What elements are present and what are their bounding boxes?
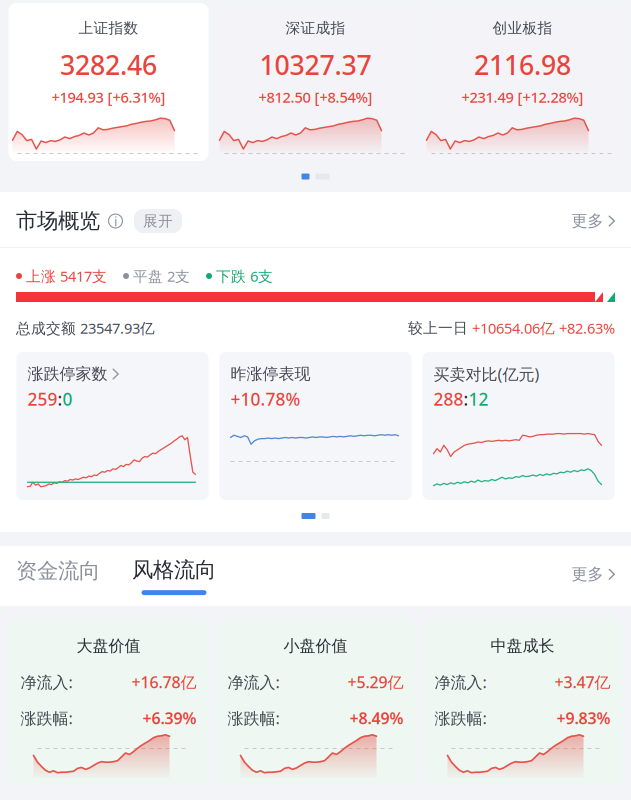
staticText: 展开 [143, 212, 173, 230]
staticText: 资金流向 [16, 558, 100, 584]
button[interactable]: Info [100, 213, 123, 228]
button[interactable]: 更多 [572, 564, 615, 595]
staticText: 涨跌停家数 [27, 364, 107, 384]
staticText: i [114, 212, 117, 230]
button[interactable]: 涨跌停家数 [16, 352, 208, 500]
staticText: 小盘价值 [283, 636, 347, 656]
staticText: 259 [27, 387, 57, 410]
staticText: 涨跌幅: [434, 707, 486, 729]
staticText: 平盘 2支 [133, 266, 190, 286]
staticText: 更多 [572, 211, 604, 231]
staticText: 较上一日 [408, 319, 472, 337]
staticText: 涨跌幅: [227, 707, 279, 729]
staticText: 0 [62, 387, 72, 410]
button[interactable]: 上证指数 [8, 3, 208, 161]
staticText: 下跌 6支 [216, 266, 273, 286]
staticText: +9.83% [556, 707, 610, 729]
staticText: 总成交额 23547.93亿 [16, 318, 155, 338]
staticText: 买卖对比(亿元) [433, 363, 539, 385]
staticText: +8.49% [349, 707, 403, 729]
button[interactable]: 深证成指 [215, 3, 415, 161]
staticText: 昨涨停表现 [230, 364, 310, 384]
staticText: 288 [433, 387, 463, 410]
button[interactable]: 昨涨停表现 [219, 352, 411, 500]
button[interactable]: 创业板指 [422, 3, 622, 161]
staticText: 3282.46 [60, 47, 157, 82]
staticText: 上证指数 [78, 19, 138, 37]
button[interactable]: 更多 [572, 211, 615, 231]
staticText: +194.93 [+6.31%] [51, 87, 165, 107]
staticText: 涨跌幅: [20, 707, 72, 729]
staticText: +812.50 [+8.54%] [258, 87, 372, 107]
staticText: 12 [468, 387, 488, 410]
staticText: 净流入: [434, 671, 486, 693]
staticText: 创业板指 [492, 19, 552, 37]
button[interactable]: 展开 [123, 209, 182, 233]
staticText: 深证成指 [285, 19, 345, 37]
staticText: 10327.37 [259, 47, 371, 82]
button[interactable]: 大盘价值 [8, 619, 208, 784]
staticText: : [463, 387, 468, 410]
staticText: 净流入: [227, 671, 279, 693]
staticText: +5.29亿 [347, 671, 403, 693]
staticText: +10654.06亿 +82.63% [472, 318, 615, 338]
staticText: 风格流向 [132, 557, 216, 583]
staticText: +231.49 [+12.28%] [461, 87, 583, 107]
button[interactable]: 中盘成长 [422, 619, 622, 784]
staticText: +3.47亿 [554, 671, 610, 693]
staticText: 上涨 5417支 [26, 266, 107, 286]
staticText: 中盘成长 [490, 636, 554, 656]
staticText: 2116.98 [474, 47, 571, 82]
button[interactable]: 买卖对比(亿元) [422, 352, 614, 500]
staticText: +10.78% [230, 387, 300, 410]
staticText: +6.39% [142, 707, 196, 729]
button[interactable]: 风格流向 [100, 557, 216, 595]
staticText: 更多 [572, 564, 604, 584]
staticText: 市场概览 [16, 208, 100, 234]
button[interactable]: 资金流向 [16, 558, 100, 595]
staticText: : [57, 387, 62, 410]
staticText: 大盘价值 [76, 636, 140, 656]
staticText: 净流入: [20, 671, 72, 693]
button[interactable]: 小盘价值 [215, 619, 415, 784]
staticText: +16.78亿 [131, 671, 196, 693]
